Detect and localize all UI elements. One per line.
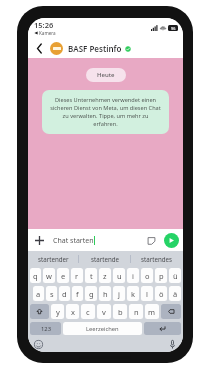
button[interactable]: x [66,304,79,319]
button[interactable]: q [30,268,41,283]
button[interactable]: w [43,268,55,283]
staticText: 96 [171,26,176,31]
button[interactable]: o [141,268,153,283]
staticText: o [145,271,150,281]
staticText: ö [159,289,164,299]
button[interactable]: startende [79,251,131,266]
staticText: Kamera [39,30,56,36]
button[interactable]: 123 [30,322,61,335]
staticText: d [62,289,67,299]
button[interactable]: e [57,268,69,283]
staticText: n [134,307,139,317]
staticText: Dieses Unternehmen verwendet einen siche… [50,96,161,128]
button[interactable]: n [129,304,143,319]
staticText: z [103,271,107,281]
button[interactable]: Löschen [161,304,181,319]
button[interactable]: Umschalt [30,304,49,319]
button[interactable]: startendes [131,251,183,266]
button[interactable]: v [97,304,111,319]
button[interactable]: Chat starten [48,233,161,248]
staticText: y [56,307,60,317]
button[interactable]: Emoji [33,339,44,350]
button[interactable]: Anhang hinzufügen [32,233,46,247]
staticText: c [86,307,90,317]
staticText: BASF Pestinfo [68,43,122,54]
button[interactable]: m [145,304,159,319]
button[interactable]: j [113,286,125,301]
staticText: 123 [41,325,51,333]
staticText: p [159,271,164,281]
staticText: h [103,289,108,299]
button[interactable]: Diktat [167,339,178,350]
button[interactable]: c [81,304,95,319]
button[interactable]: u [113,268,125,283]
staticText: Leerzeichen [86,325,119,333]
staticText: ü [173,271,178,281]
button[interactable]: Leerzeichen [63,322,142,335]
staticText: e [61,271,66,281]
staticText: ä [173,289,178,299]
staticText: w [46,271,52,281]
button[interactable]: b [113,304,127,319]
button[interactable]: l [141,286,153,301]
button[interactable]: h [99,286,111,301]
button[interactable]: i [127,268,139,283]
button[interactable]: startender [28,251,79,266]
button[interactable]: ü [169,268,181,283]
button[interactable]: d [59,286,70,301]
staticText: i [132,271,134,281]
button[interactable]: r [71,268,83,283]
button[interactable]: k [127,286,139,301]
button[interactable]: Eingabe [144,322,181,335]
staticText: r [75,271,79,281]
staticText: l [146,289,148,299]
staticText: startende [91,255,120,263]
button[interactable]: p [155,268,167,283]
button[interactable]: Senden [164,233,179,248]
staticText: a [36,289,41,299]
button[interactable]: a [33,286,44,301]
staticText: startender [38,255,69,263]
staticText: g [89,289,94,299]
other: Sticker [147,236,156,245]
staticText: f [76,289,79,299]
staticText: Heute [97,71,115,79]
staticText: startendes [141,255,173,263]
staticText: s [50,289,54,299]
staticText: k [131,289,136,299]
staticText: v [102,307,106,317]
button[interactable]: y [51,304,64,319]
staticText: b [118,307,123,317]
staticText: x [71,307,75,317]
staticText: j [118,289,120,299]
button[interactable]: t [85,268,97,283]
button[interactable]: s [46,286,57,301]
staticText: u [117,271,122,281]
button[interactable]: Zurück [32,41,46,55]
button[interactable]: ä [169,286,181,301]
staticText: m [148,307,156,317]
staticText: 15:26 [34,20,54,30]
button[interactable]: f [72,286,83,301]
button[interactable]: BASF Pestinfo [50,42,179,55]
button[interactable]: z [99,268,111,283]
staticText: Chat starten [53,236,94,246]
staticText: q [33,271,38,281]
button[interactable]: g [85,286,97,301]
button[interactable]: ö [155,286,167,301]
staticText: t [90,271,93,281]
